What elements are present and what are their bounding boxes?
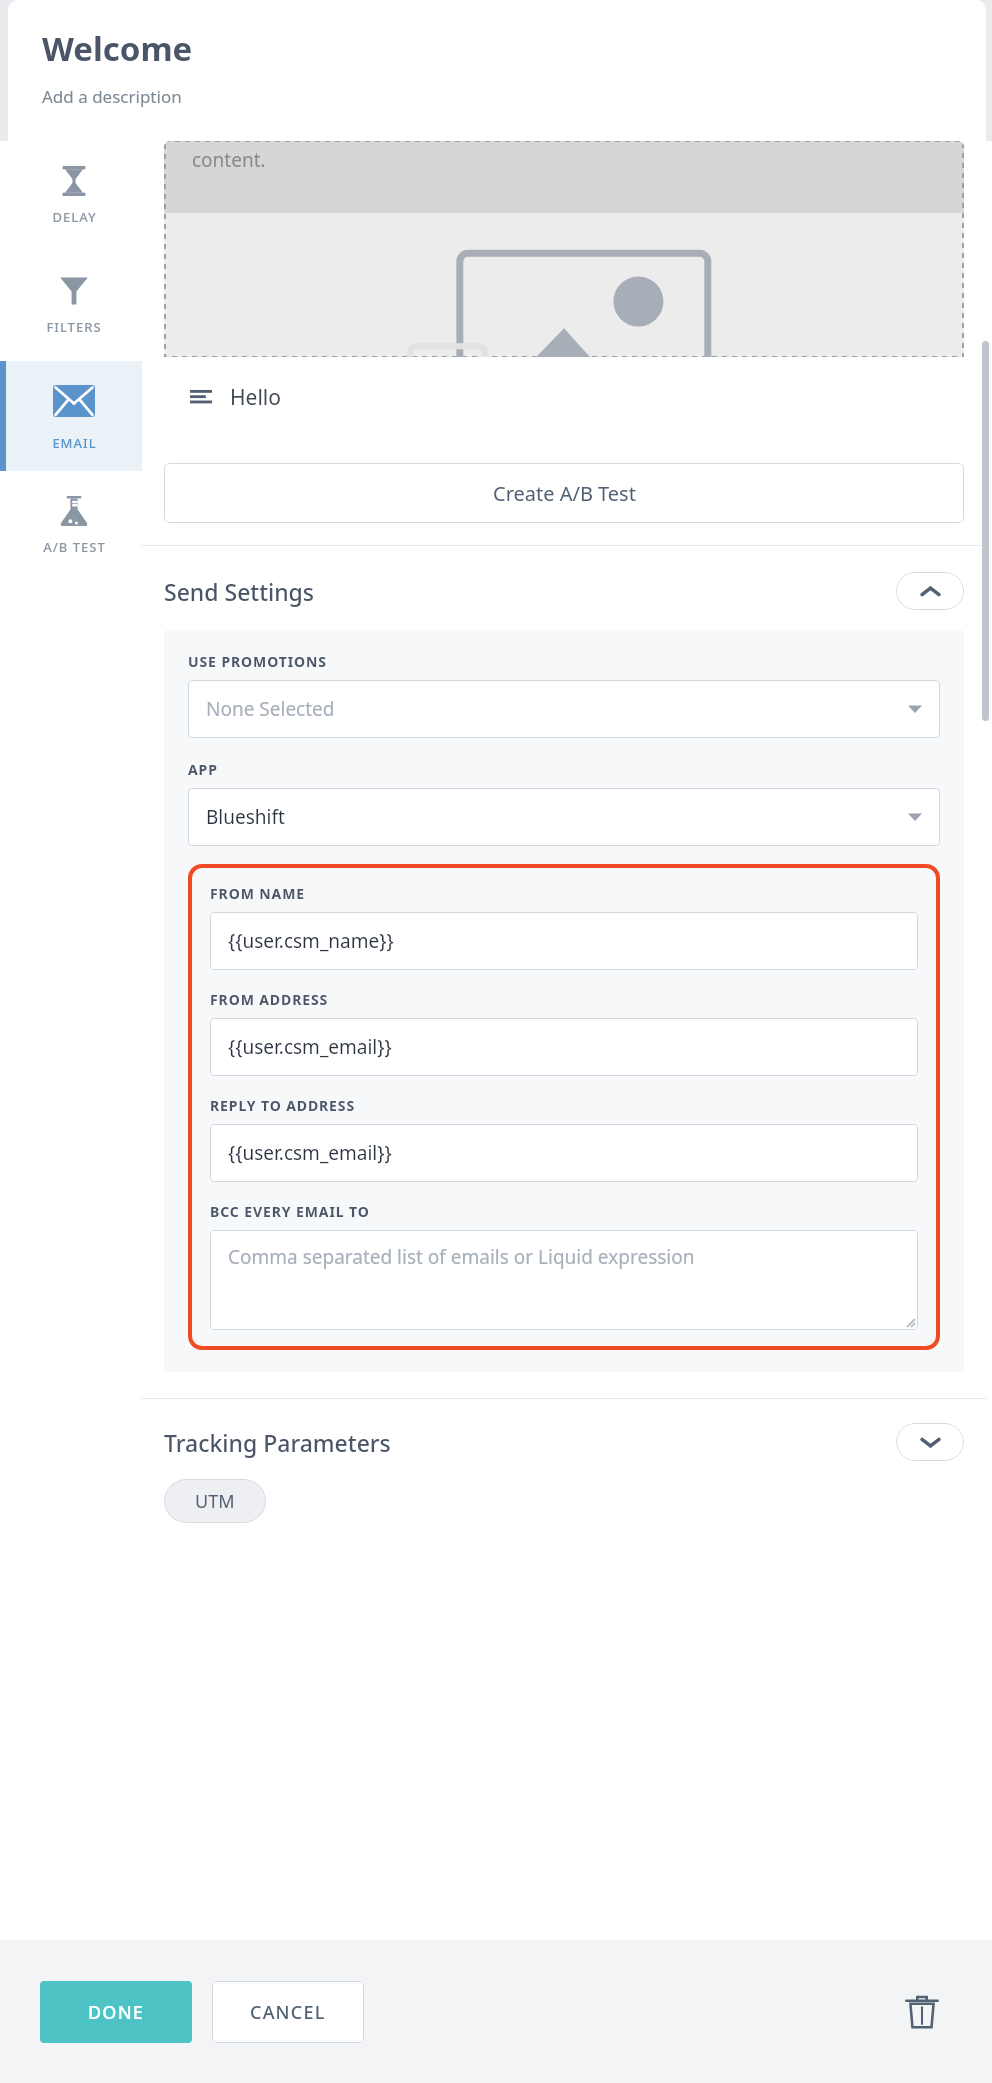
button[interactable]: EMAIL — [0, 361, 142, 471]
staticText: Tracking Parameters — [164, 1427, 391, 1458]
staticText: BCC EVERY EMAIL TO — [210, 1202, 370, 1221]
staticText: Add a description — [42, 85, 182, 108]
button[interactable]: Collapse Send Settings — [896, 572, 964, 610]
staticText: Comma separated list of emails or Liquid… — [228, 1244, 695, 1270]
button[interactable]: Delete — [892, 1982, 952, 2042]
button[interactable]: Create A/B Test — [164, 463, 964, 523]
button[interactable]: {{user.csm_name}} — [210, 912, 918, 970]
staticText: FROM NAME — [210, 884, 305, 903]
staticText: {{user.csm_email}} — [228, 1140, 392, 1166]
button[interactable]: Blueshift — [188, 788, 940, 846]
staticText: REPLY TO ADDRESS — [210, 1096, 356, 1115]
button[interactable]: {{user.csm_email}} — [210, 1124, 918, 1182]
staticText: APP — [188, 760, 218, 779]
staticText: A/B TEST — [43, 538, 106, 556]
staticText: {{user.csm_name}} — [228, 928, 394, 954]
staticText: FILTERS — [46, 318, 102, 336]
staticText: CANCEL — [250, 2000, 326, 2025]
button[interactable]: DONE — [40, 1981, 192, 2043]
staticText: DONE — [88, 2000, 145, 2025]
staticText: content. — [192, 147, 266, 173]
button[interactable]: None Selected — [188, 680, 940, 738]
button[interactable]: Comma separated list of emails or Liquid… — [210, 1230, 918, 1330]
staticText: DELAY — [52, 208, 97, 226]
button[interactable]: A/B TEST — [0, 471, 142, 581]
staticText: FROM ADDRESS — [210, 990, 329, 1009]
staticText: Blueshift — [206, 804, 285, 830]
staticText: Send Settings — [164, 576, 315, 607]
button[interactable]: Expand Tracking Parameters — [896, 1423, 964, 1461]
button[interactable]: UTM — [164, 1479, 266, 1523]
staticText: EMAIL — [52, 434, 97, 452]
staticText: {{user.csm_email}} — [228, 1034, 392, 1060]
staticText: UTM — [195, 1489, 235, 1514]
button[interactable]: {{user.csm_email}} — [210, 1018, 918, 1076]
staticText: Create A/B Test — [493, 480, 636, 507]
staticText: None Selected — [206, 696, 335, 722]
staticText: Welcome — [42, 26, 193, 71]
staticText: Hello — [230, 383, 281, 412]
button[interactable]: FILTERS — [0, 251, 142, 361]
staticText: USE PROMOTIONS — [188, 652, 327, 671]
button[interactable]: DELAY — [0, 141, 142, 251]
button[interactable]: CANCEL — [212, 1981, 364, 2043]
